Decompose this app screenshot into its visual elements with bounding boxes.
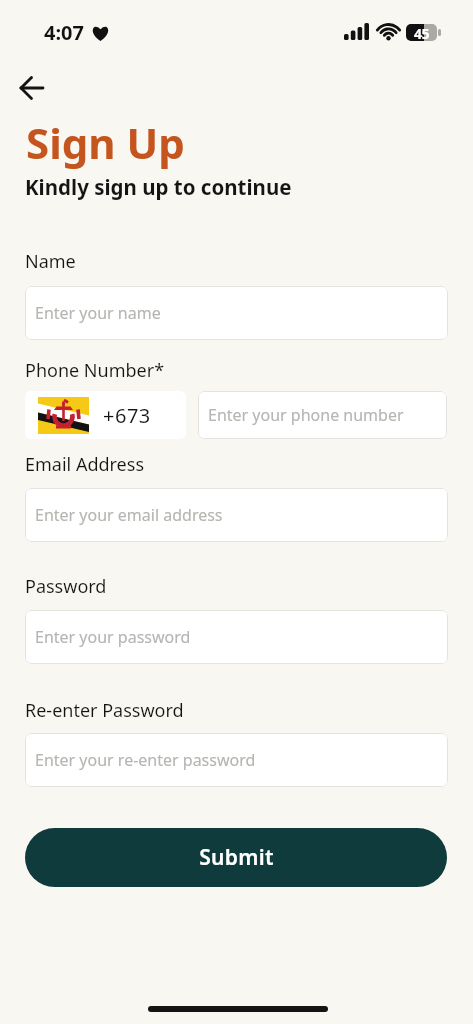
button[interactable]: +673 xyxy=(25,391,186,439)
staticText: Re-enter Password xyxy=(25,698,184,723)
button[interactable]: Submit xyxy=(25,828,447,887)
staticText: Enter your phone number xyxy=(208,404,404,426)
button[interactable]: Enter your phone number xyxy=(198,391,447,439)
staticText: Sign Up xyxy=(26,114,185,171)
staticText: Enter your email address xyxy=(35,504,223,526)
staticText: Name xyxy=(25,249,76,274)
button[interactable]: Enter your password xyxy=(25,610,448,664)
button[interactable]: Enter your name xyxy=(25,286,448,340)
staticText: Enter your re-enter password xyxy=(35,749,256,771)
button[interactable]: Enter your re-enter password xyxy=(25,733,448,787)
staticText: 4:07 xyxy=(44,19,84,46)
staticText: Submit xyxy=(199,843,274,872)
staticText: Kindly sign up to continue xyxy=(25,173,292,201)
button[interactable] xyxy=(12,68,52,108)
button[interactable]: Enter your email address xyxy=(25,488,448,542)
staticText: Password xyxy=(25,574,107,599)
staticText: +673 xyxy=(103,402,151,429)
staticText: Enter your password xyxy=(35,626,191,648)
staticText: Enter your name xyxy=(35,302,161,324)
staticText: 45 xyxy=(414,24,430,41)
staticText: Phone Number* xyxy=(25,358,165,383)
staticText: Email Address xyxy=(25,452,145,477)
